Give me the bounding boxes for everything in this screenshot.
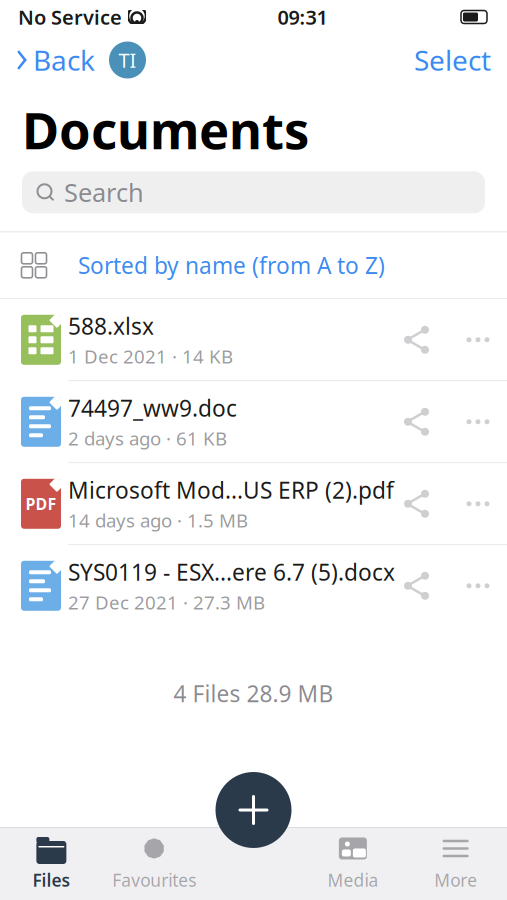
button[interactable]: Add (215, 772, 291, 848)
staticText: Sorted by name (from A to Z) (78, 250, 385, 280)
staticText: 1 Dec 2021 · 14 KB (68, 344, 233, 369)
button[interactable]: More (404, 826, 507, 900)
staticText: No Service (18, 4, 122, 30)
button[interactable]: Account (109, 41, 146, 78)
staticText: Documents (22, 96, 309, 163)
staticText: TI (118, 47, 136, 73)
button[interactable]: PDF (0, 463, 507, 544)
button[interactable]: Grid view (16, 251, 52, 279)
staticText: Favourites (112, 868, 196, 891)
staticText: Media (327, 868, 378, 891)
staticText: Microsoft Mod...US ERP (2).pdf (68, 475, 394, 505)
staticText: 2 days ago · 61 KB (68, 426, 227, 451)
staticText: 14 days ago · 1.5 MB (68, 508, 248, 533)
staticText: 588.xlsx (68, 311, 154, 341)
button[interactable]: Media (301, 826, 404, 900)
staticText: 74497_ww9.doc (68, 393, 237, 423)
staticText: Back (33, 41, 95, 79)
button[interactable]: 74497_ww9.doc (0, 381, 507, 462)
button[interactable]: Sorted by name (from A to Z) (78, 250, 385, 280)
button[interactable]: Back (16, 37, 95, 83)
staticText: 4 Files 28.9 MB (173, 678, 333, 708)
staticText: Files (32, 868, 70, 891)
staticText: SYS0119 - ESX...ere 6.7 (5).docx (68, 557, 395, 587)
button[interactable]: 588.xlsx (0, 299, 507, 380)
staticText: Select (414, 41, 491, 79)
button[interactable]: SYS0119 - ESX...ere 6.7 (5).docx (0, 545, 507, 626)
staticText: More (434, 868, 477, 891)
staticText: 09:31 (277, 4, 327, 30)
button[interactable]: Select (414, 37, 491, 83)
staticText: 27 Dec 2021 · 27.3 MB (68, 590, 265, 615)
staticText: PDF (25, 493, 56, 514)
staticText: Search (64, 175, 144, 209)
button[interactable]: Files (0, 826, 103, 900)
button[interactable]: Favourites (103, 826, 206, 900)
